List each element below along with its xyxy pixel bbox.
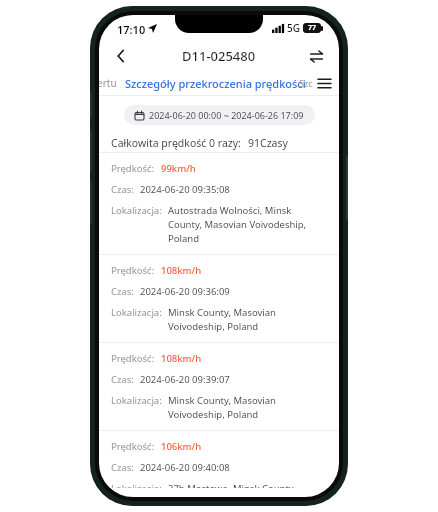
button[interactable]: Prędkość: (99, 255, 339, 342)
staticText: 37b Mostowa, Minsk County, Masovian Voiv… (168, 482, 327, 488)
staticText: Prędkość: (111, 352, 155, 365)
staticText: 2024-06-20 09:35:08 (140, 183, 230, 196)
staticText: Lokalizacja: (111, 306, 162, 319)
button[interactable]: Prędkość: (99, 153, 339, 254)
button[interactable]: Menu (314, 73, 334, 93)
button[interactable]: Swap (303, 43, 329, 69)
staticText: 5G (287, 21, 300, 35)
staticText: 77 (308, 23, 317, 33)
staticText: 2024-06-20 09:39:07 (140, 373, 230, 386)
button[interactable]: 2024-06-20 00:00 ~ 2024-06-26 17:09 (124, 105, 315, 125)
button[interactable]: Back (107, 42, 135, 70)
button[interactable]: Prędkość: (99, 343, 339, 430)
staticText: Minsk County, Masovian Voivodeship, Pola… (168, 306, 327, 333)
staticText: Lokalizacja: (111, 394, 162, 407)
staticText: D11-025480 (182, 47, 256, 65)
staticText: Czas: (111, 461, 134, 474)
staticText: Czas: (111, 285, 134, 298)
staticText: 91Czasy (248, 136, 288, 150)
staticText: Całkowita prędkość 0 razy: (111, 136, 241, 150)
staticText: 106km/h (161, 440, 202, 453)
button[interactable]: Prędkość: (99, 431, 339, 497)
staticText: Lokalizacja: (111, 482, 162, 488)
staticText: Autostrada Wolności, Minsk County, Masov… (168, 204, 327, 245)
staticText: 108km/h (161, 264, 202, 277)
staticText: Czas: (111, 183, 134, 196)
staticText: 108km/h (161, 352, 202, 365)
button[interactable]: ertu (99, 76, 117, 90)
staticText: Lokalizacja: (111, 204, 162, 217)
button[interactable]: Szczegóły przekroczenia prędkości (125, 76, 306, 91)
staticText: Czas: (111, 373, 134, 386)
staticText: 2024-06-20 09:36:09 (140, 285, 230, 298)
staticText: Prędkość: (111, 440, 155, 453)
staticText: 2024-06-20 00:00 ~ 2024-06-26 17:09 (149, 109, 304, 121)
staticText: 99km/h (161, 162, 196, 175)
staticText: 2024-06-20 09:40:08 (140, 461, 230, 474)
staticText: Prędkość: (111, 264, 155, 277)
staticText: Minsk County, Masovian Voivodeship, Pola… (168, 394, 327, 421)
staticText: Prędkość: (111, 162, 155, 175)
button[interactable]: Szc (299, 77, 313, 89)
staticText: 17:10 (117, 22, 146, 37)
